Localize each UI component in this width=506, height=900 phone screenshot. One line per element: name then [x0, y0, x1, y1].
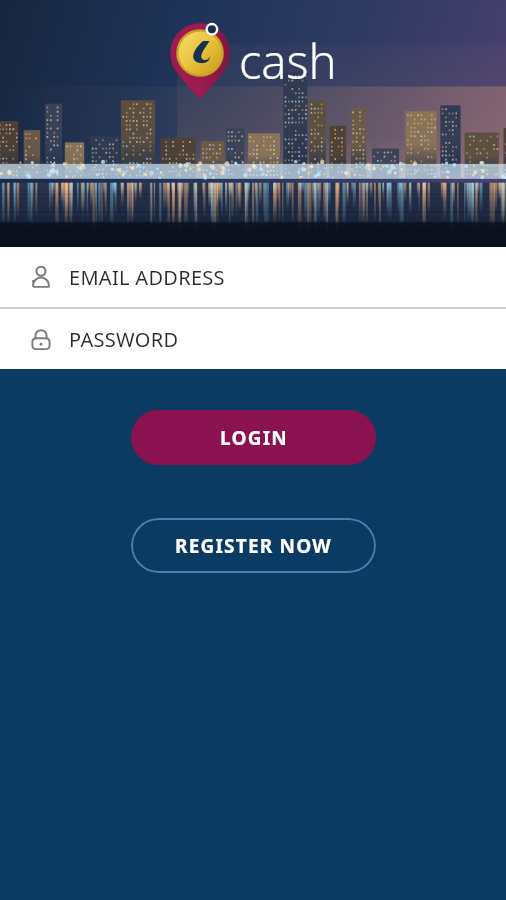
button[interactable]: REGISTER NOW	[131, 518, 376, 573]
staticText: PASSWORD	[69, 326, 179, 353]
button[interactable]: LOGIN	[131, 410, 376, 465]
staticText: EMAIL ADDRESS	[69, 264, 225, 291]
staticText: REGISTER NOW	[175, 533, 332, 559]
staticText: cash	[239, 29, 337, 93]
button[interactable]: PASSWORD	[0, 309, 506, 369]
staticText: LOGIN	[220, 425, 288, 451]
button[interactable]: EMAIL ADDRESS	[0, 247, 506, 307]
